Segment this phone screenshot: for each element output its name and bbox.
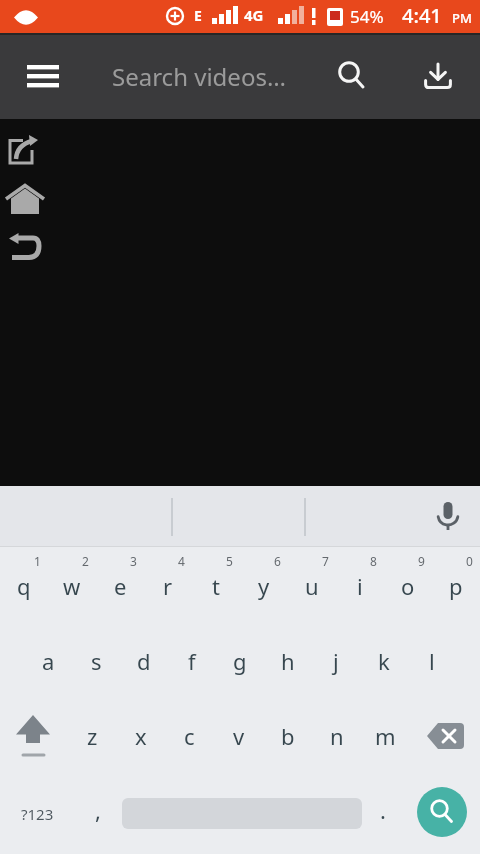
button[interactable]: 1: [0, 547, 48, 623]
button[interactable]: s: [72, 623, 120, 698]
staticText: j: [333, 646, 339, 676]
button[interactable]: m: [361, 698, 410, 773]
staticText: 4:41: [402, 2, 442, 29]
staticText: w: [63, 571, 81, 601]
staticText: y: [258, 571, 270, 601]
button[interactable]: 3: [96, 547, 144, 623]
staticText: l: [429, 646, 435, 676]
staticText: a: [42, 646, 55, 676]
staticText: x: [135, 721, 147, 751]
staticText: 54%: [350, 5, 384, 28]
staticText: o: [401, 571, 415, 601]
button[interactable]: [0, 698, 68, 773]
button[interactable]: 2: [48, 547, 96, 623]
button[interactable]: [3, 177, 47, 221]
button[interactable]: n: [312, 698, 361, 773]
staticText: t: [212, 571, 220, 601]
staticText: z: [87, 721, 98, 751]
staticText: 3: [130, 553, 137, 569]
button[interactable]: 6: [240, 547, 288, 623]
button[interactable]: b: [263, 698, 312, 773]
staticText: ?123: [21, 804, 54, 824]
button[interactable]: v: [214, 698, 263, 773]
button[interactable]: [417, 787, 467, 837]
button[interactable]: 8: [336, 547, 384, 623]
staticText: r: [163, 571, 173, 601]
staticText: 1: [34, 553, 41, 569]
staticText: k: [378, 646, 390, 676]
button[interactable]: [428, 496, 468, 536]
button[interactable]: 5: [192, 547, 240, 623]
staticText: s: [91, 646, 102, 676]
staticText: 5: [226, 553, 233, 569]
button[interactable]: 9: [384, 547, 432, 623]
staticText: .: [380, 795, 386, 825]
button[interactable]: .: [362, 773, 404, 854]
button[interactable]: [414, 52, 462, 100]
staticText: h: [281, 646, 295, 676]
button[interactable]: ?123: [0, 773, 74, 854]
button[interactable]: [410, 698, 480, 773]
staticText: 4: [178, 553, 185, 569]
button[interactable]: k: [360, 623, 408, 698]
staticText: n: [330, 721, 344, 751]
staticText: e: [114, 571, 127, 601]
button[interactable]: 7: [288, 547, 336, 623]
button[interactable]: h: [264, 623, 312, 698]
button[interactable]: g: [216, 623, 264, 698]
staticText: c: [184, 721, 195, 751]
staticText: ,: [95, 795, 101, 825]
button[interactable]: a: [24, 623, 72, 698]
button[interactable]: Search videos…: [112, 52, 286, 100]
button[interactable]: j: [312, 623, 360, 698]
staticText: f: [188, 646, 196, 676]
staticText: 4G: [244, 5, 264, 25]
staticText: PM: [452, 9, 472, 27]
staticText: q: [17, 571, 31, 601]
button[interactable]: f: [168, 623, 216, 698]
staticText: d: [137, 646, 151, 676]
staticText: 8: [370, 553, 377, 569]
staticText: 6: [274, 553, 281, 569]
button[interactable]: [15, 52, 71, 100]
staticText: 2: [82, 553, 89, 569]
staticText: v: [233, 721, 245, 751]
button[interactable]: [3, 225, 47, 269]
staticText: i: [357, 571, 363, 601]
staticText: 0: [466, 553, 473, 569]
staticText: E: [194, 6, 202, 25]
staticText: p: [449, 571, 463, 601]
button[interactable]: c: [165, 698, 214, 773]
button[interactable]: l: [408, 623, 456, 698]
button[interactable]: ,: [74, 773, 122, 854]
staticText: b: [281, 721, 295, 751]
staticText: 9: [418, 553, 425, 569]
button[interactable]: 4: [144, 547, 192, 623]
staticText: m: [375, 721, 396, 751]
button[interactable]: [0, 128, 44, 172]
staticText: g: [233, 646, 247, 676]
button[interactable]: d: [120, 623, 168, 698]
staticText: u: [305, 571, 319, 601]
staticText: Search videos…: [112, 60, 286, 93]
button[interactable]: 0: [432, 547, 480, 623]
button[interactable]: x: [116, 698, 165, 773]
button[interactable]: [328, 52, 376, 100]
button[interactable]: z: [68, 698, 116, 773]
staticText: 7: [322, 553, 329, 569]
